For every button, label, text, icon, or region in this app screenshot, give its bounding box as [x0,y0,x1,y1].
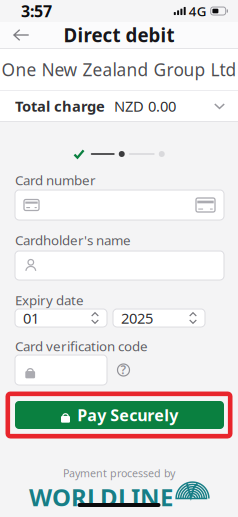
button[interactable]: Back [5,22,37,48]
staticText: Payment processed by [63,466,175,480]
staticText: 3:57 [21,0,52,22]
staticText: Cardholder's name [15,231,131,249]
staticText: One New Zealand Group Ltd [1,58,236,81]
button[interactable]: What is a card verification code [117,363,130,376]
staticText: Direct debit [63,23,174,47]
staticText: Total charge [15,96,105,116]
staticText: ? [120,361,126,377]
staticText: NZD 0.00 [114,96,176,116]
staticText: WORLDLINE [29,481,173,513]
staticText: Pay Securely [77,404,178,426]
staticText: 01 [23,308,39,328]
button[interactable]: 2025 [113,309,205,327]
staticText: Card verification code [15,337,148,355]
button[interactable]: Total charge [0,91,238,121]
staticText: 4G [189,2,207,20]
button[interactable]: Pay Securely [15,401,224,429]
button[interactable]: 01 [15,309,107,327]
staticText: Card number [15,171,96,189]
staticText: 2025 [121,308,153,328]
staticText: Expiry date [15,291,84,309]
